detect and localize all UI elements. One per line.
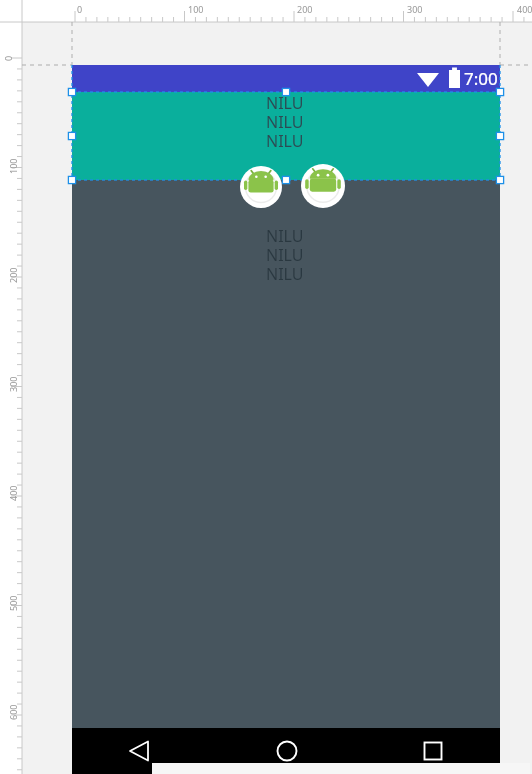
- staticText: 500: [7, 595, 19, 611]
- staticText: 100: [7, 158, 19, 174]
- staticText: NILU: [266, 111, 304, 130]
- staticText: 0: [2, 55, 14, 61]
- staticText: NILU: [266, 225, 304, 244]
- button[interactable]: Recent apps: [411, 730, 455, 772]
- staticText: 300: [7, 376, 19, 392]
- staticText: 600: [7, 704, 19, 720]
- staticText: NILU: [266, 130, 304, 149]
- button[interactable]: Home: [265, 730, 309, 772]
- staticText: NILU: [266, 244, 304, 263]
- staticText: 200: [7, 267, 19, 283]
- button[interactable]: Android app icon: [301, 164, 345, 208]
- staticText: 100: [188, 3, 204, 15]
- staticText: NILU: [266, 263, 304, 282]
- staticText: 7:00: [464, 67, 498, 90]
- staticText: 300: [407, 3, 423, 15]
- button[interactable]: Android app icon: [240, 166, 282, 208]
- staticText: 400: [7, 485, 19, 501]
- staticText: 400: [517, 3, 532, 15]
- button[interactable]: Back: [118, 730, 162, 772]
- staticText: NILU: [266, 92, 304, 111]
- staticText: 0: [77, 3, 83, 15]
- staticText: 200: [297, 3, 313, 15]
